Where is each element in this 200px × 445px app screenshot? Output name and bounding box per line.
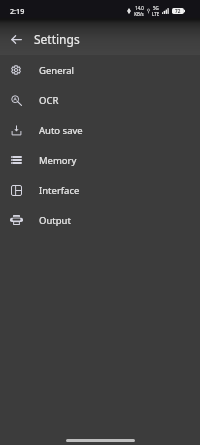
button[interactable]: Interface [0, 175, 200, 205]
button[interactable]: General [0, 55, 200, 85]
button[interactable]: Output [0, 205, 200, 235]
staticText: 14.0 [135, 5, 144, 11]
button[interactable]: OCR [0, 85, 200, 115]
staticText: Memory [39, 154, 77, 167]
button[interactable]: Auto save [0, 115, 200, 145]
staticText: 72 [175, 8, 181, 14]
staticText: Settings [34, 31, 80, 47]
staticText: Interface [39, 184, 80, 197]
button[interactable]: Navigate up [2, 25, 30, 53]
staticText: General [39, 64, 75, 77]
staticText: 2:19 [10, 6, 25, 16]
staticText: OCR [39, 94, 59, 107]
staticText: LTE [152, 11, 160, 17]
staticText: 5G [153, 5, 159, 11]
staticText: KB/s [134, 11, 144, 17]
button[interactable]: Memory [0, 145, 200, 175]
staticText: Output [39, 214, 71, 227]
staticText: Auto save [39, 124, 83, 137]
